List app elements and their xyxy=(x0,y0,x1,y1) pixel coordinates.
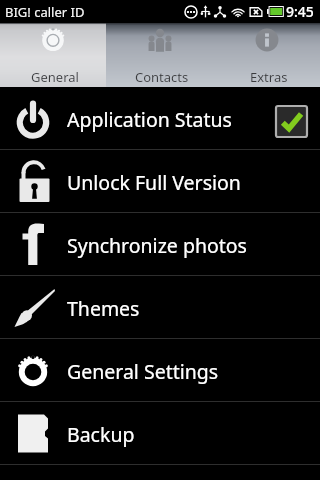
staticText: Unlock Full Version xyxy=(67,169,320,196)
button[interactable]: Extras xyxy=(213,23,320,87)
staticText: Contacts xyxy=(135,68,189,86)
staticText: Application Status xyxy=(67,106,278,133)
staticText: Themes xyxy=(67,295,320,322)
button[interactable]: General xyxy=(0,23,106,87)
button[interactable]: General Settings xyxy=(0,339,320,401)
button[interactable]: Backup xyxy=(0,402,320,464)
staticText: Extras xyxy=(250,68,288,86)
staticText: 9:45 xyxy=(286,2,314,21)
button[interactable]: Synchronize photos xyxy=(0,213,320,275)
button[interactable]: Contacts xyxy=(106,23,213,87)
button[interactable]: Toggle application status xyxy=(276,106,307,137)
staticText: General xyxy=(31,68,79,86)
staticText: Synchronize photos xyxy=(67,232,320,259)
button[interactable]: Application Status xyxy=(0,87,320,149)
button[interactable]: Unlock Full Version xyxy=(0,150,320,212)
button[interactable]: Themes xyxy=(0,276,320,338)
staticText: General Settings xyxy=(67,358,320,385)
staticText: BIG! caller ID xyxy=(5,3,85,21)
staticText: Backup xyxy=(67,421,320,448)
